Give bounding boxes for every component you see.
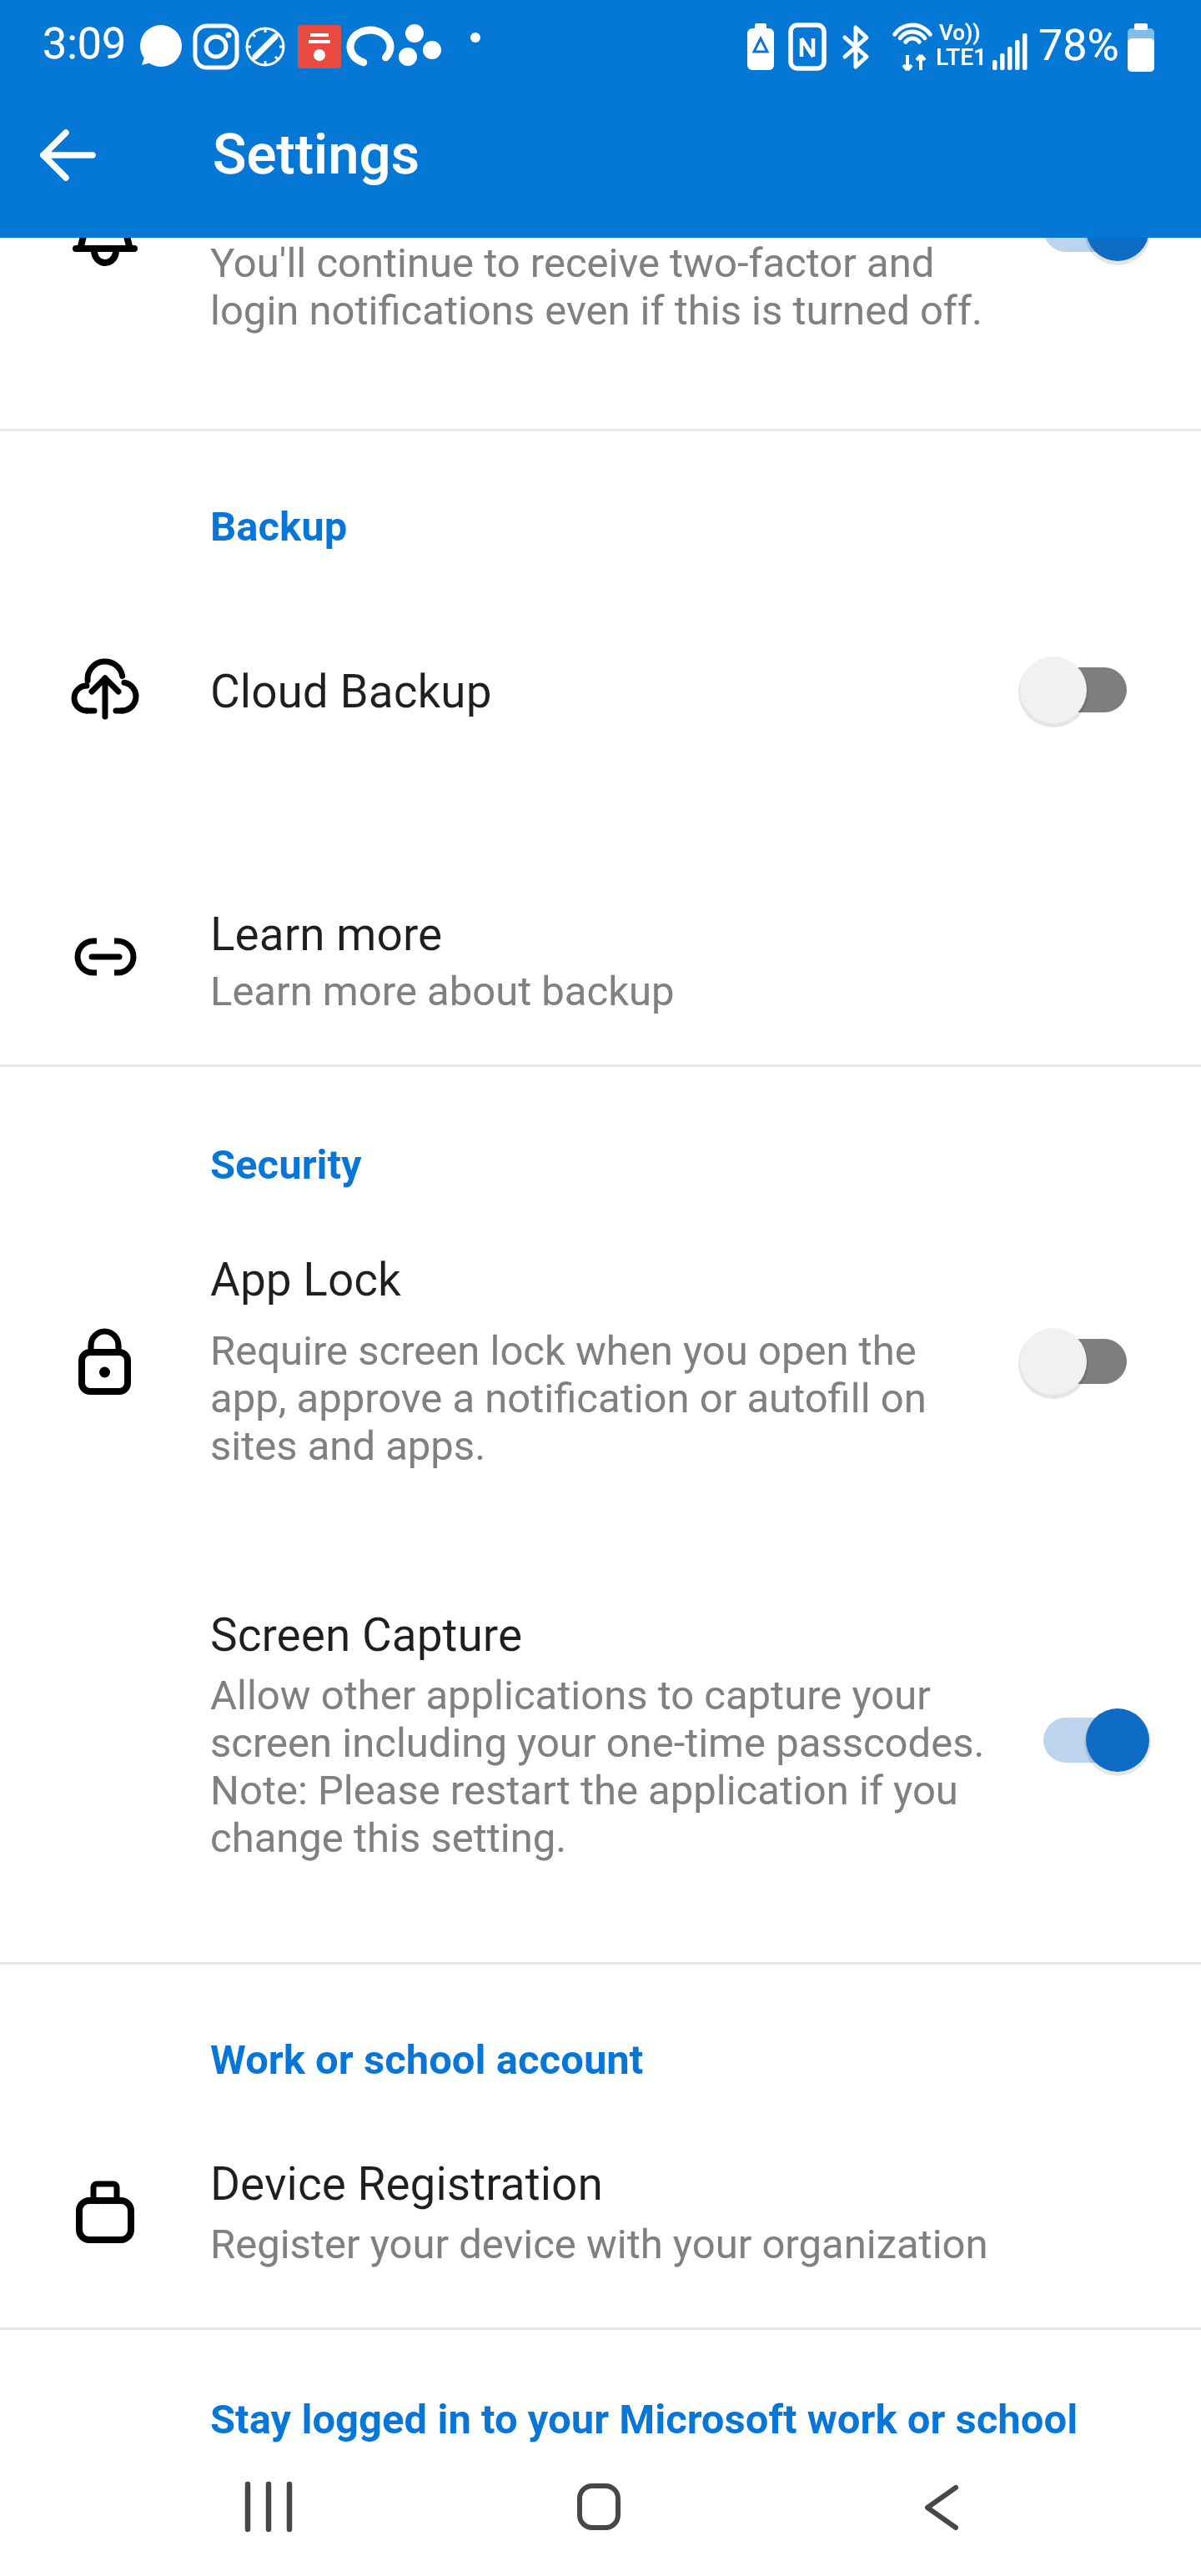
staticText: App Lock [210, 1253, 401, 1306]
staticText: Device Registration [210, 2157, 603, 2211]
staticText: 3:09 [43, 18, 127, 69]
staticText: Backup [210, 503, 348, 551]
button[interactable] [217, 2461, 325, 2561]
button[interactable] [1013, 1325, 1155, 1398]
staticText: Register your device with your organizat… [210, 2221, 988, 2268]
staticText: Cloud Backup [210, 665, 492, 718]
staticText: LTE1 [936, 43, 987, 71]
staticText: Settings [213, 122, 420, 188]
staticText: Stay logged in to your Microsoft work or… [210, 2396, 1078, 2443]
staticText: Security [210, 1141, 362, 1189]
button[interactable]: Learn more [0, 868, 1201, 1034]
staticText: Work or school account [210, 2036, 644, 2084]
button[interactable] [1018, 193, 1160, 266]
staticText: Require screen lock when you open the ap… [210, 1327, 927, 1470]
button[interactable]: Device Registration [0, 2136, 1201, 2294]
button[interactable]: Cloud Backup [0, 617, 1201, 767]
button[interactable] [884, 2461, 992, 2561]
button[interactable] [1018, 1703, 1160, 1777]
button[interactable]: App Lock [0, 1226, 1201, 1493]
staticText: Screen Capture [210, 1608, 523, 1662]
staticText: Allow other applications to capture your… [210, 1672, 985, 1862]
staticText: You'll continue to receive two-factor an… [210, 239, 982, 335]
button[interactable] [546, 2461, 655, 2561]
button[interactable] [18, 105, 118, 205]
button[interactable] [1013, 653, 1155, 727]
button[interactable]: You'll continue to receive two-factor an… [0, 192, 1201, 384]
staticText: 78% [1038, 20, 1119, 71]
button[interactable]: Screen Capture [0, 1585, 1201, 1894]
staticText: Learn more [210, 908, 443, 961]
staticText: Learn more about backup [210, 968, 675, 1015]
staticText: Vo)) [939, 20, 981, 45]
